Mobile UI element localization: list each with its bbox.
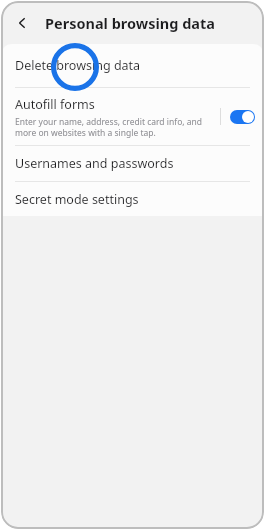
button[interactable]: Autofill forms toggle	[230, 110, 255, 124]
staticText: Autofill forms	[15, 96, 95, 113]
button[interactable]: Delete browsing data	[1, 44, 264, 87]
staticText: Enter your name, address, credit card in…	[15, 116, 214, 138]
button[interactable]: Back	[11, 11, 35, 35]
staticText: Personal browsing data	[45, 13, 216, 33]
staticText: Usernames and passwords	[15, 155, 174, 172]
button[interactable]: Autofill forms	[1, 88, 264, 145]
staticText: Delete browsing data	[15, 57, 141, 74]
staticText: Secret mode settings	[15, 191, 139, 208]
button[interactable]: Usernames and passwords	[1, 146, 264, 181]
button[interactable]: Secret mode settings	[1, 182, 264, 216]
